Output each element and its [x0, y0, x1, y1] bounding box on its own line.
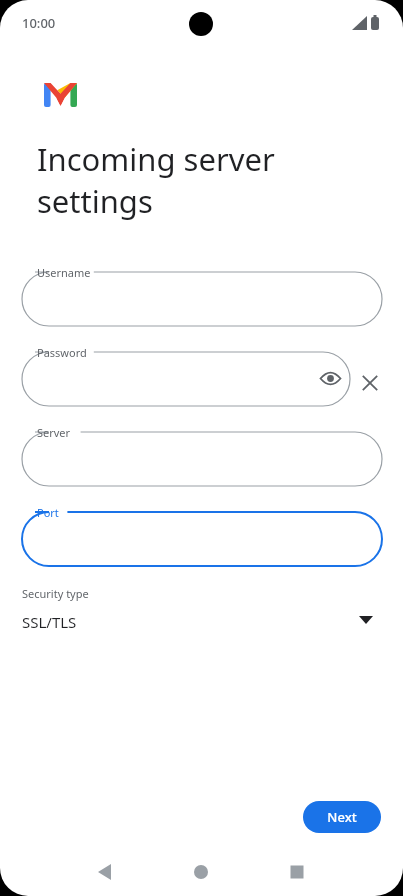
button[interactable]: Clear password	[356, 369, 384, 397]
button[interactable]: Port	[22, 512, 382, 566]
staticText: SSL/TLS	[22, 612, 77, 632]
button[interactable]: Password	[22, 352, 350, 406]
button[interactable]: Server	[22, 432, 382, 486]
button[interactable]: Show password	[317, 365, 344, 392]
staticText: Port	[37, 505, 59, 520]
staticText: 10:00	[22, 14, 56, 32]
button[interactable]: Username	[22, 272, 382, 326]
button[interactable]: Home	[181, 852, 221, 892]
button[interactable]: Next	[303, 801, 381, 833]
button[interactable]: Security type	[22, 584, 382, 634]
staticText: Next	[327, 808, 357, 826]
staticText: Username	[37, 265, 91, 280]
button[interactable]: Back	[85, 852, 125, 892]
staticText: Incoming server settings	[37, 138, 367, 222]
staticText: Security type	[22, 586, 89, 601]
staticText: Server	[37, 425, 71, 440]
staticText: Password	[37, 345, 87, 360]
button[interactable]: Recent apps	[277, 852, 317, 892]
